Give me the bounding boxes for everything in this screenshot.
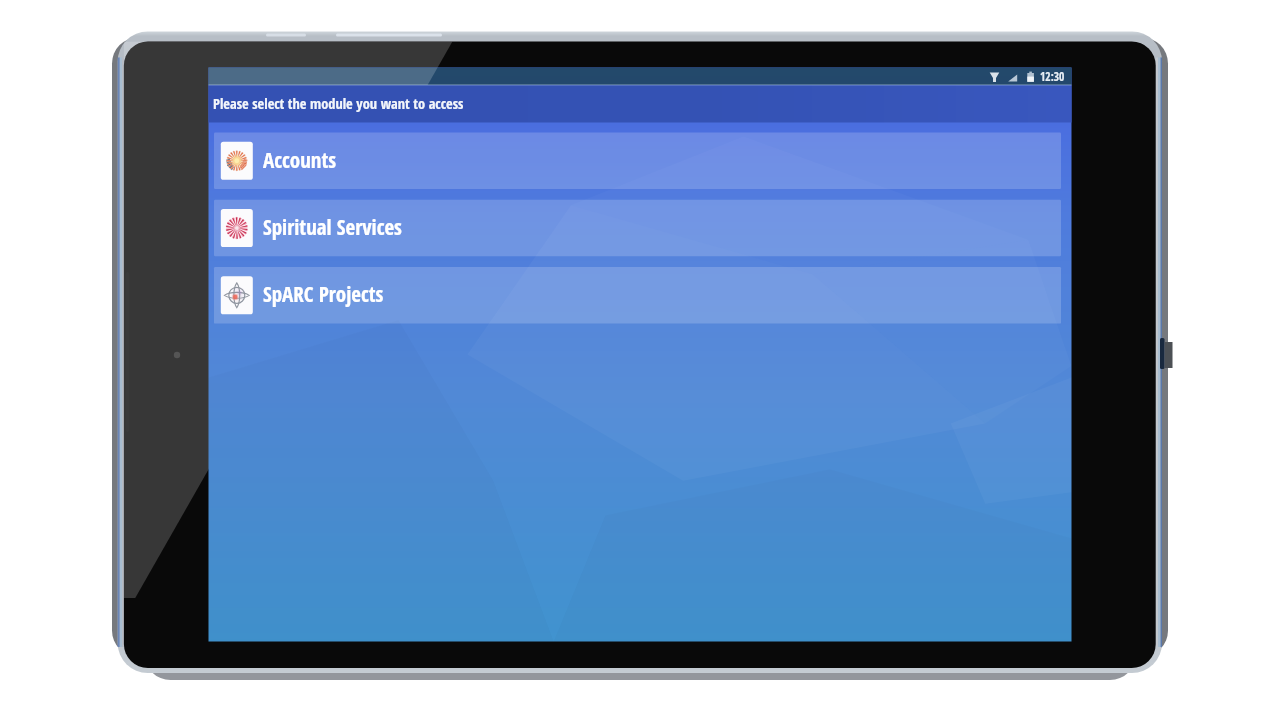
staticText: SpARC Projects (263, 280, 384, 309)
staticText: Please select the module you want to acc… (213, 94, 464, 114)
button[interactable]: Spiritual Services (214, 200, 1061, 257)
staticText: Accounts (263, 146, 337, 175)
button[interactable]: SpARC Projects (214, 267, 1061, 324)
staticText: Spiritual Services (263, 213, 402, 242)
button[interactable]: Accounts (214, 133, 1061, 190)
staticText: 12:30 (1040, 69, 1065, 85)
